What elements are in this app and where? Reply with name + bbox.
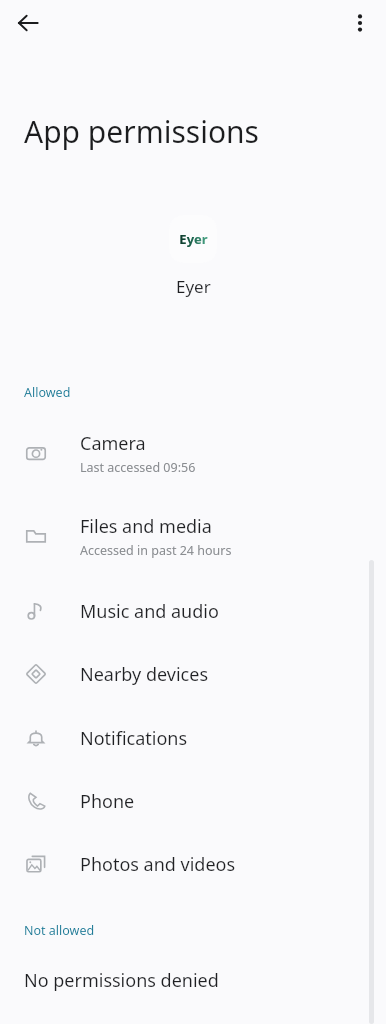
staticText: Photos and videos [80, 852, 236, 877]
button[interactable]: Notifications [0, 714, 386, 762]
staticText: Not allowed [24, 922, 95, 939]
staticText: Allowed [24, 384, 71, 401]
staticText: Nearby devices [80, 662, 208, 687]
staticText: Notifications [80, 726, 188, 751]
button[interactable]: Nearby devices [0, 650, 386, 698]
button[interactable]: More options [340, 3, 380, 43]
button[interactable]: Back [8, 3, 48, 43]
staticText: Eyer [179, 230, 208, 248]
button[interactable]: Photos and videos [0, 840, 386, 888]
staticText: Phone [80, 789, 135, 814]
staticText: Files and media [80, 514, 212, 539]
staticText: No permissions denied [24, 968, 219, 993]
staticText: Accessed in past 24 hours [80, 542, 232, 559]
staticText: Eyer [176, 275, 211, 298]
staticText: Music and audio [80, 599, 219, 624]
button[interactable]: Music and audio [0, 587, 386, 635]
button[interactable]: Phone [0, 777, 386, 825]
button[interactable]: Camera [0, 425, 386, 481]
staticText: Camera [80, 431, 146, 456]
staticText: Last accessed 09:56 [80, 459, 196, 476]
button[interactable]: Files and media [0, 508, 386, 564]
staticText: App permissions [24, 111, 259, 152]
